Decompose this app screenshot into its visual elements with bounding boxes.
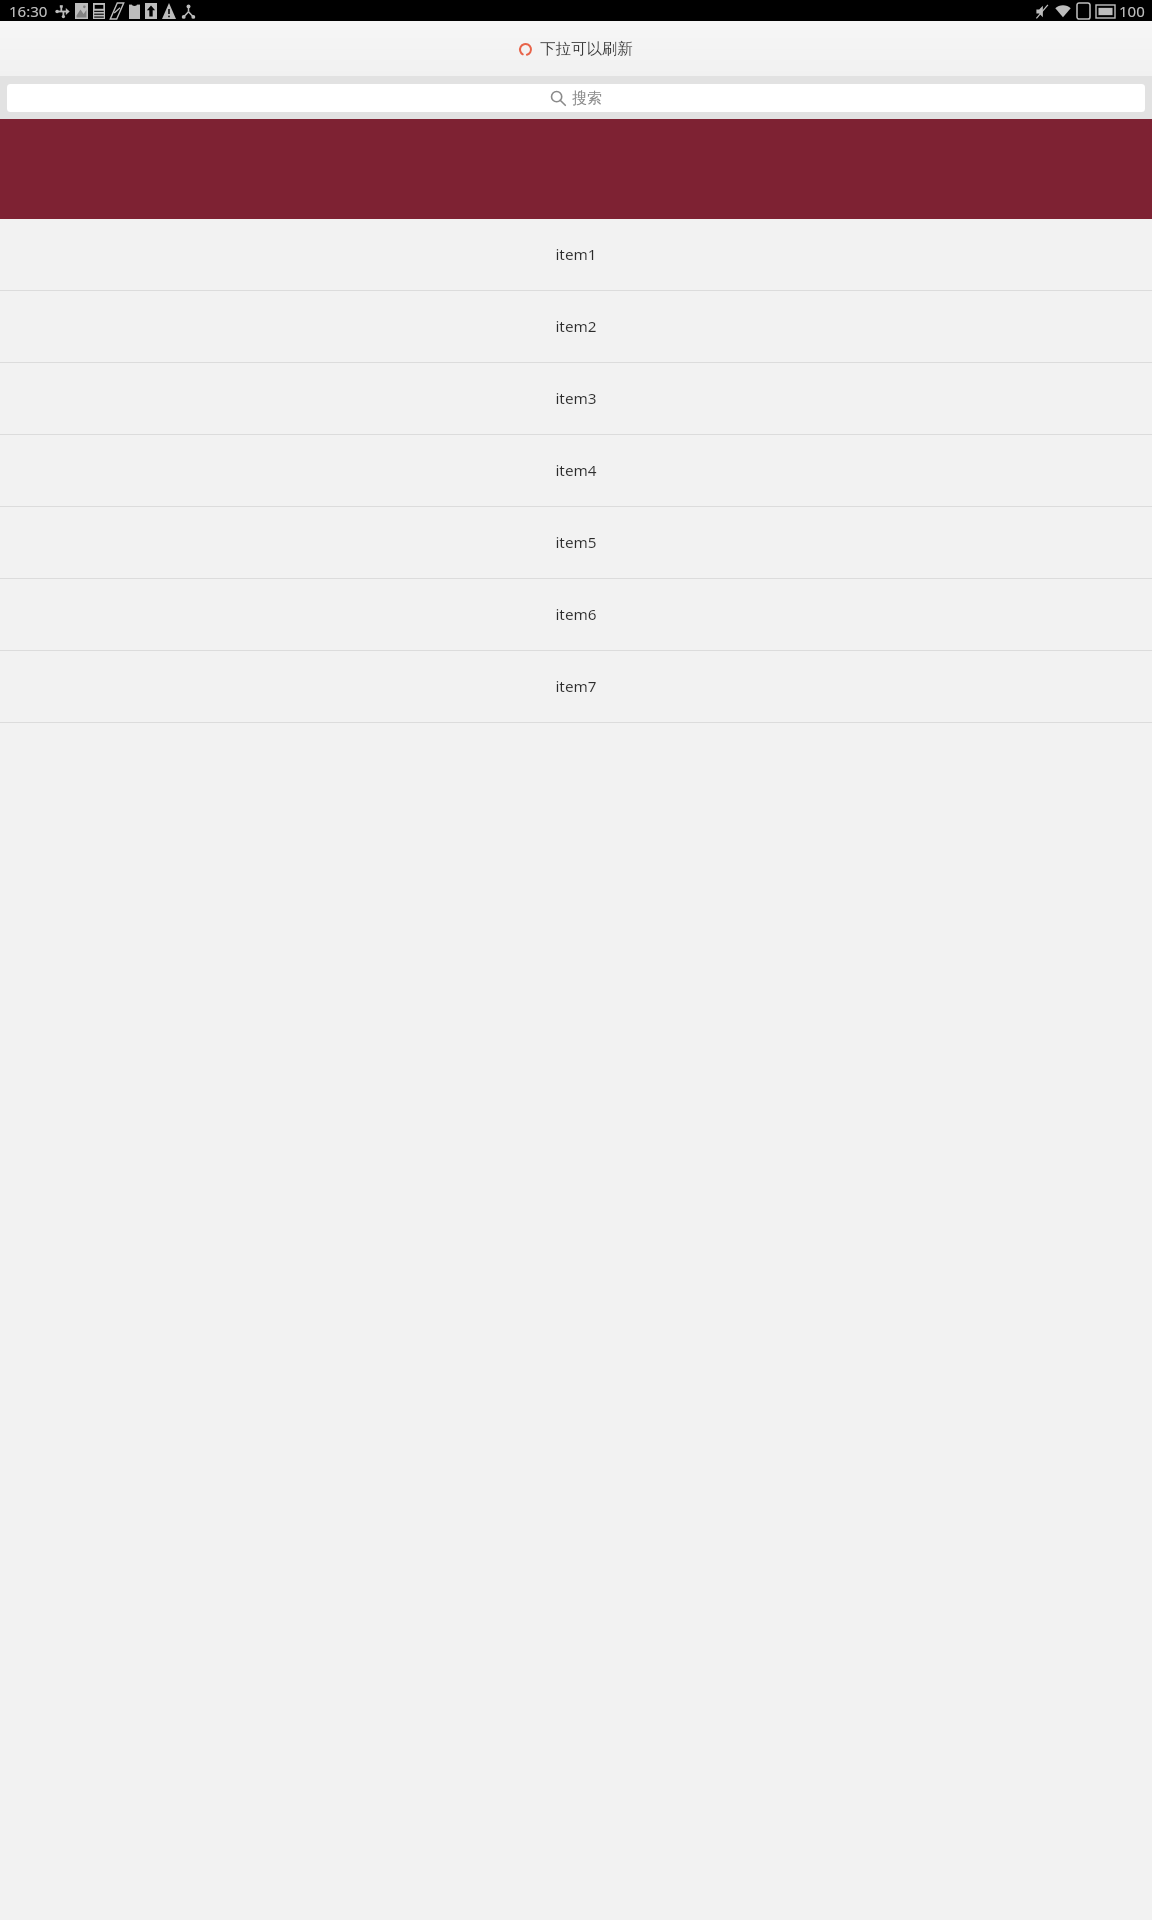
button[interactable]: item4 xyxy=(0,435,1152,506)
button[interactable]: item2 xyxy=(0,291,1152,362)
staticText: 下拉可以刷新 xyxy=(540,39,633,59)
button[interactable]: item6 xyxy=(0,579,1152,650)
staticText: item4 xyxy=(555,460,597,481)
staticText: item1 xyxy=(555,244,597,265)
button[interactable]: item3 xyxy=(0,363,1152,434)
button[interactable]: item5 xyxy=(0,507,1152,578)
staticText: item7 xyxy=(555,676,597,697)
staticText: item5 xyxy=(555,532,597,553)
staticText: 100 xyxy=(1119,1,1145,21)
staticText: item6 xyxy=(555,604,597,625)
staticText: item2 xyxy=(555,316,597,337)
button[interactable]: item1 xyxy=(0,219,1152,290)
button[interactable]: item7 xyxy=(0,651,1152,722)
staticText: 搜索 xyxy=(572,89,602,108)
staticText: 16:30 xyxy=(9,1,48,21)
staticText: item3 xyxy=(555,388,597,409)
button[interactable]: 搜索 xyxy=(7,84,1145,112)
